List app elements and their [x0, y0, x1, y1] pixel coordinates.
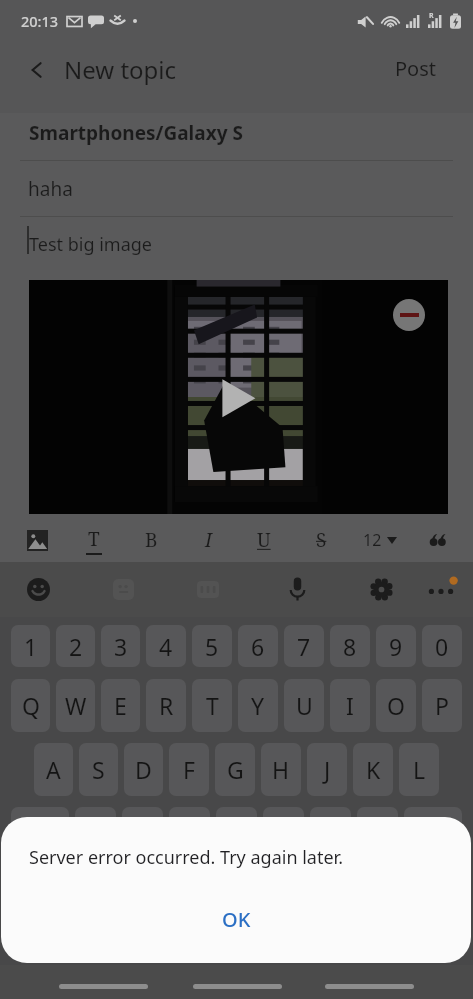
- button[interactable]: Q: [11, 679, 50, 732]
- staticText: 7: [297, 631, 311, 662]
- button[interactable]: Y: [238, 679, 278, 732]
- staticText: Q: [22, 690, 40, 721]
- button[interactable]: K: [353, 743, 393, 796]
- button[interactable]: E: [101, 679, 140, 732]
- button[interactable]: Navigate up: [24, 57, 50, 83]
- staticText: I: [346, 690, 354, 721]
- staticText: S: [92, 754, 105, 785]
- button[interactable]: 9: [376, 625, 416, 667]
- button[interactable]: Key: [263, 807, 304, 860]
- staticText: L: [413, 754, 426, 785]
- button[interactable]: O: [376, 679, 416, 732]
- button[interactable]: I: [330, 679, 370, 732]
- button[interactable]: Keyboard settings: [362, 570, 400, 608]
- button[interactable]: Stickers: [104, 570, 142, 608]
- button[interactable]: Key: [122, 807, 163, 860]
- button[interactable]: OK: [1, 892, 471, 946]
- staticText: D: [135, 754, 152, 785]
- staticText: U: [257, 527, 271, 553]
- staticText: Y: [251, 690, 265, 721]
- button[interactable]: P: [422, 679, 462, 732]
- staticText: W: [65, 690, 87, 721]
- staticText: R: [429, 11, 434, 21]
- button[interactable]: Key: [404, 807, 462, 860]
- staticText: 0: [435, 631, 449, 662]
- staticText: U: [296, 690, 313, 721]
- button[interactable]: D: [124, 743, 163, 796]
- button[interactable]: 4: [146, 625, 186, 667]
- button[interactable]: Post: [395, 55, 436, 82]
- button[interactable]: 5: [192, 625, 232, 667]
- staticText: E: [114, 690, 127, 721]
- staticText: F: [183, 754, 195, 785]
- button[interactable]: Quote: [422, 518, 456, 562]
- staticText: T: [206, 690, 219, 721]
- staticText: S: [316, 527, 327, 553]
- button[interactable]: Insert image: [20, 518, 54, 562]
- button[interactable]: Italic: [191, 518, 225, 562]
- button[interactable]: 3: [101, 625, 140, 667]
- staticText: J: [324, 754, 331, 785]
- staticText: T: [88, 526, 100, 552]
- button[interactable]: Key: [11, 807, 69, 860]
- button[interactable]: More options: [422, 570, 460, 608]
- button[interactable]: System navigation: [325, 984, 414, 989]
- staticText: New topic: [64, 53, 177, 86]
- button[interactable]: 2: [56, 625, 95, 667]
- button[interactable]: T: [192, 679, 232, 732]
- button[interactable]: L: [399, 743, 439, 796]
- button[interactable]: Key: [357, 807, 398, 860]
- staticText: 2: [69, 631, 83, 662]
- button[interactable]: W: [56, 679, 95, 732]
- staticText: B: [145, 527, 158, 553]
- staticText: Test big image: [29, 232, 152, 257]
- button[interactable]: J: [307, 743, 347, 796]
- staticText: OK: [222, 906, 251, 933]
- button[interactable]: U: [284, 679, 324, 732]
- button[interactable]: Remove attachment: [393, 299, 425, 331]
- staticText: Smartphones/Galaxy S: [29, 120, 243, 146]
- button[interactable]: F: [169, 743, 209, 796]
- staticText: 8: [343, 631, 357, 662]
- button[interactable]: Bold: [134, 518, 168, 562]
- button[interactable]: G: [215, 743, 255, 796]
- button[interactable]: Key: [75, 807, 116, 860]
- staticText: 12: [363, 529, 382, 551]
- staticText: 5: [205, 631, 219, 662]
- staticText: 20:13: [21, 11, 59, 31]
- button[interactable]: System navigation: [193, 984, 282, 989]
- button[interactable]: 0: [422, 625, 462, 667]
- button[interactable]: Key: [216, 807, 257, 860]
- button[interactable]: H: [261, 743, 301, 796]
- button[interactable]: 6: [238, 625, 278, 667]
- staticText: 3: [114, 631, 128, 662]
- staticText: H: [272, 754, 290, 785]
- button[interactable]: Key: [310, 807, 351, 860]
- button[interactable]: A: [34, 743, 73, 796]
- button[interactable]: System navigation: [59, 984, 148, 989]
- staticText: K: [366, 754, 381, 785]
- button[interactable]: Underline: [247, 518, 281, 562]
- button[interactable]: Voice input: [278, 570, 316, 608]
- button[interactable]: R: [146, 679, 186, 732]
- button[interactable]: Strikethrough: [304, 518, 338, 562]
- button[interactable]: Text colour: [77, 518, 111, 562]
- staticText: Post: [395, 55, 436, 82]
- staticText: 9: [389, 631, 403, 662]
- button[interactable]: Emoji: [19, 570, 57, 608]
- button[interactable]: S: [79, 743, 118, 796]
- button[interactable]: 1: [11, 625, 50, 667]
- button[interactable]: GIF: [189, 570, 227, 608]
- button[interactable]: Key: [169, 807, 210, 860]
- staticText: A: [46, 754, 61, 785]
- button[interactable]: 12: [361, 529, 399, 551]
- staticText: Server error occurred. Try again later.: [29, 845, 343, 870]
- staticText: 4: [159, 631, 173, 662]
- staticText: P: [435, 690, 449, 721]
- staticText: G: [227, 754, 244, 785]
- staticText: 1: [24, 631, 38, 662]
- staticText: I: [205, 527, 212, 553]
- staticText: R: [159, 690, 174, 721]
- button[interactable]: 7: [284, 625, 324, 667]
- button[interactable]: 8: [330, 625, 370, 667]
